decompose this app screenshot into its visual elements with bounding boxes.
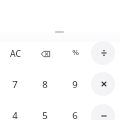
- button[interactable]: Multiply: [91, 72, 115, 96]
- staticText: %: [72, 47, 79, 58]
- button[interactable]: 5: [30, 100, 60, 120]
- button[interactable]: 7: [0, 69, 30, 100]
- button[interactable]: AC: [0, 38, 30, 69]
- button[interactable]: 6: [60, 100, 90, 120]
- button[interactable]: Subtract: [91, 104, 115, 120]
- button[interactable]: 4: [0, 100, 30, 120]
- button[interactable]: 8: [30, 69, 60, 100]
- button[interactable]: %: [60, 37, 90, 68]
- staticText: 6: [72, 109, 78, 120]
- staticText: 5: [42, 109, 48, 120]
- staticText: 8: [42, 78, 48, 91]
- staticText: AC: [10, 48, 21, 60]
- button[interactable]: Divide: [91, 41, 115, 65]
- staticText: 7: [12, 78, 18, 91]
- staticText: 9: [72, 78, 78, 91]
- staticText: 4: [12, 109, 18, 120]
- button[interactable]: 9: [60, 69, 90, 100]
- button[interactable]: Backspace: [30, 38, 60, 69]
